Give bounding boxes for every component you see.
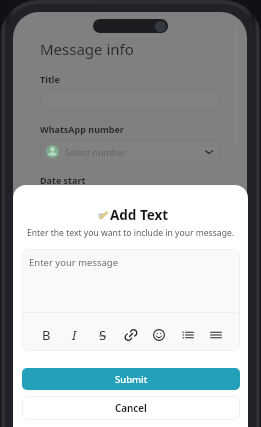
staticText: Submit	[115, 373, 148, 386]
staticText: Enter your message	[29, 256, 119, 269]
staticText: B	[42, 326, 51, 344]
staticText: Date start	[40, 174, 86, 186]
staticText: Enter the text you want to include in yo…	[13, 227, 248, 239]
staticText: Select number	[65, 146, 127, 158]
button[interactable]: Align text	[206, 325, 226, 345]
button[interactable]: Insert link	[121, 325, 141, 345]
staticText: WhatsApp number	[40, 123, 124, 135]
button[interactable]: Submit	[22, 368, 240, 390]
staticText: Cancel	[115, 402, 147, 415]
staticText: S	[99, 326, 107, 344]
staticText: Add Text	[110, 206, 169, 224]
staticText: I	[72, 326, 77, 344]
button[interactable]: Bulleted list	[178, 325, 198, 345]
button[interactable]: Bold	[36, 325, 56, 345]
button[interactable]: Italic	[64, 325, 84, 345]
button[interactable]: Strikethrough	[93, 325, 113, 345]
staticText: Title	[40, 73, 60, 85]
staticText: Message info	[40, 39, 134, 59]
button[interactable]: Cancel	[22, 396, 240, 420]
button[interactable]: Insert emoji	[149, 325, 169, 345]
